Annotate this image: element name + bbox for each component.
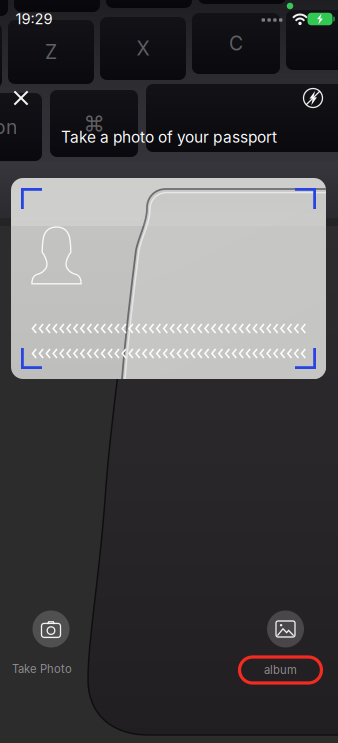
staticText: album xyxy=(264,663,297,677)
staticText: X xyxy=(136,37,149,60)
staticText: Take a photo of your passport xyxy=(61,128,277,146)
staticText: ⌘ xyxy=(83,111,104,136)
button[interactable]: Flash off xyxy=(291,76,335,120)
staticText: tion xyxy=(0,115,17,139)
staticText: 19:29 xyxy=(15,10,52,28)
staticText: C xyxy=(229,32,243,55)
button[interactable]: Take Photo xyxy=(0,595,102,685)
staticText: Take Photo xyxy=(12,662,72,676)
staticText: Z xyxy=(45,40,57,64)
button[interactable]: Close xyxy=(0,76,43,120)
button[interactable]: album xyxy=(234,595,336,685)
